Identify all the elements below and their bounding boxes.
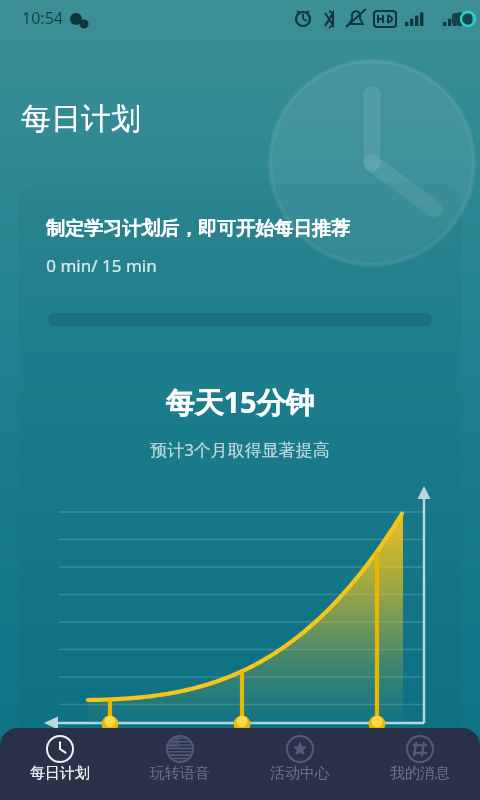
staticText: 每日计划 bbox=[21, 100, 141, 138]
staticText: 每日计划 bbox=[30, 764, 90, 783]
button[interactable]: 玩转语音 bbox=[120, 728, 240, 800]
staticText: 每天15分钟 bbox=[165, 382, 315, 422]
button[interactable]: 活动中心 bbox=[240, 728, 360, 800]
staticText: 预计3个月取得显著提高 bbox=[150, 438, 330, 461]
button[interactable]: 我的消息 bbox=[360, 728, 480, 800]
staticText: 0 min/ 15 min bbox=[46, 254, 157, 277]
staticText: 玩转语音 bbox=[150, 764, 210, 783]
staticText: 我的消息 bbox=[390, 764, 450, 783]
staticText: 制定学习计划后，即可开始每日推荐 bbox=[46, 217, 350, 241]
button[interactable]: 每日计划 bbox=[0, 728, 120, 800]
staticText: 10:54 bbox=[22, 7, 63, 29]
staticText: 活动中心 bbox=[270, 764, 330, 783]
